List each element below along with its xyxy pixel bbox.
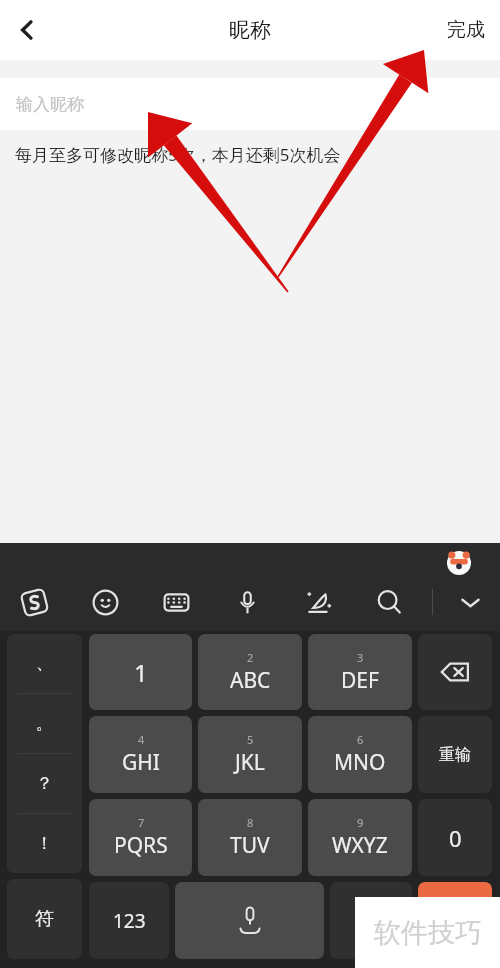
- button[interactable]: 搜索: [418, 882, 492, 959]
- staticText: 重输: [439, 745, 471, 765]
- button[interactable]: 中文 / 英文切换: [330, 882, 412, 959]
- staticText: 、: [36, 653, 53, 674]
- staticText: 5: [247, 732, 254, 747]
- staticText: 1: [134, 656, 148, 689]
- button[interactable]: 123: [89, 882, 169, 959]
- button[interactable]: 、: [7, 634, 82, 693]
- button[interactable]: 1: [89, 634, 192, 710]
- staticText: ！: [36, 833, 53, 854]
- staticText: /: [377, 910, 384, 933]
- staticText: DEF: [341, 666, 379, 695]
- button[interactable]: Keyboard layout: [156, 582, 196, 622]
- button[interactable]: 符号: [7, 879, 82, 959]
- staticText: 完成: [447, 18, 485, 42]
- button[interactable]: Emoji: [85, 582, 125, 622]
- staticText: 每月至多可修改昵称5次，本月还剩5次机会: [15, 143, 341, 166]
- button[interactable]: 0: [418, 799, 492, 876]
- staticText: 2: [247, 650, 254, 665]
- button[interactable]: Account avatar: [447, 551, 471, 575]
- staticText: 。: [36, 713, 53, 734]
- staticText: 8: [247, 815, 254, 830]
- staticText: 4: [138, 732, 145, 747]
- button[interactable]: 重输: [418, 716, 492, 793]
- button[interactable]: 8 TUV: [198, 799, 302, 876]
- staticText: 6: [357, 732, 364, 747]
- staticText: 符: [35, 907, 54, 931]
- button[interactable]: 9 WXYZ: [308, 799, 412, 876]
- button[interactable]: ？: [7, 754, 82, 813]
- button[interactable]: Back: [0, 3, 54, 57]
- button[interactable]: Space, voice input: [175, 882, 324, 959]
- staticText: 搜索: [438, 910, 472, 931]
- button[interactable]: Voice input: [227, 582, 267, 622]
- button[interactable]: 完成: [432, 6, 500, 54]
- staticText: 3: [357, 650, 364, 665]
- staticText: ABC: [230, 666, 271, 695]
- button[interactable]: 7 PQRS: [89, 799, 192, 876]
- button[interactable]: Sogou input: [14, 582, 54, 622]
- button[interactable]: Handwriting: [298, 582, 338, 622]
- button[interactable]: 2 ABC: [198, 634, 302, 710]
- staticText: PQRS: [114, 831, 168, 860]
- staticText: ？: [36, 773, 53, 794]
- button[interactable]: 3 DEF: [308, 634, 412, 710]
- staticText: 7: [138, 815, 145, 830]
- button[interactable]: Backspace: [418, 634, 492, 710]
- staticText: TUV: [230, 831, 270, 860]
- button[interactable]: 输入昵称: [0, 78, 500, 130]
- staticText: 输入昵称: [16, 94, 84, 115]
- button[interactable]: 6 MNO: [308, 716, 412, 793]
- staticText: JKL: [235, 748, 265, 777]
- button[interactable]: ！: [7, 814, 82, 873]
- button[interactable]: 4 GHI: [89, 716, 192, 793]
- staticText: 9: [357, 815, 364, 830]
- staticText: 软件技巧: [374, 916, 482, 950]
- button[interactable]: 5 JKL: [198, 716, 302, 793]
- staticText: WXYZ: [332, 831, 388, 860]
- staticText: 0: [449, 823, 462, 853]
- staticText: 昵称: [229, 17, 271, 43]
- button[interactable]: 。: [7, 694, 82, 753]
- staticText: MNO: [334, 748, 386, 777]
- button[interactable]: Search: [369, 582, 409, 622]
- staticText: 123: [113, 908, 146, 934]
- button[interactable]: Hide keyboard: [450, 582, 490, 622]
- staticText: GHI: [122, 748, 160, 777]
- staticText: 中: [358, 909, 377, 933]
